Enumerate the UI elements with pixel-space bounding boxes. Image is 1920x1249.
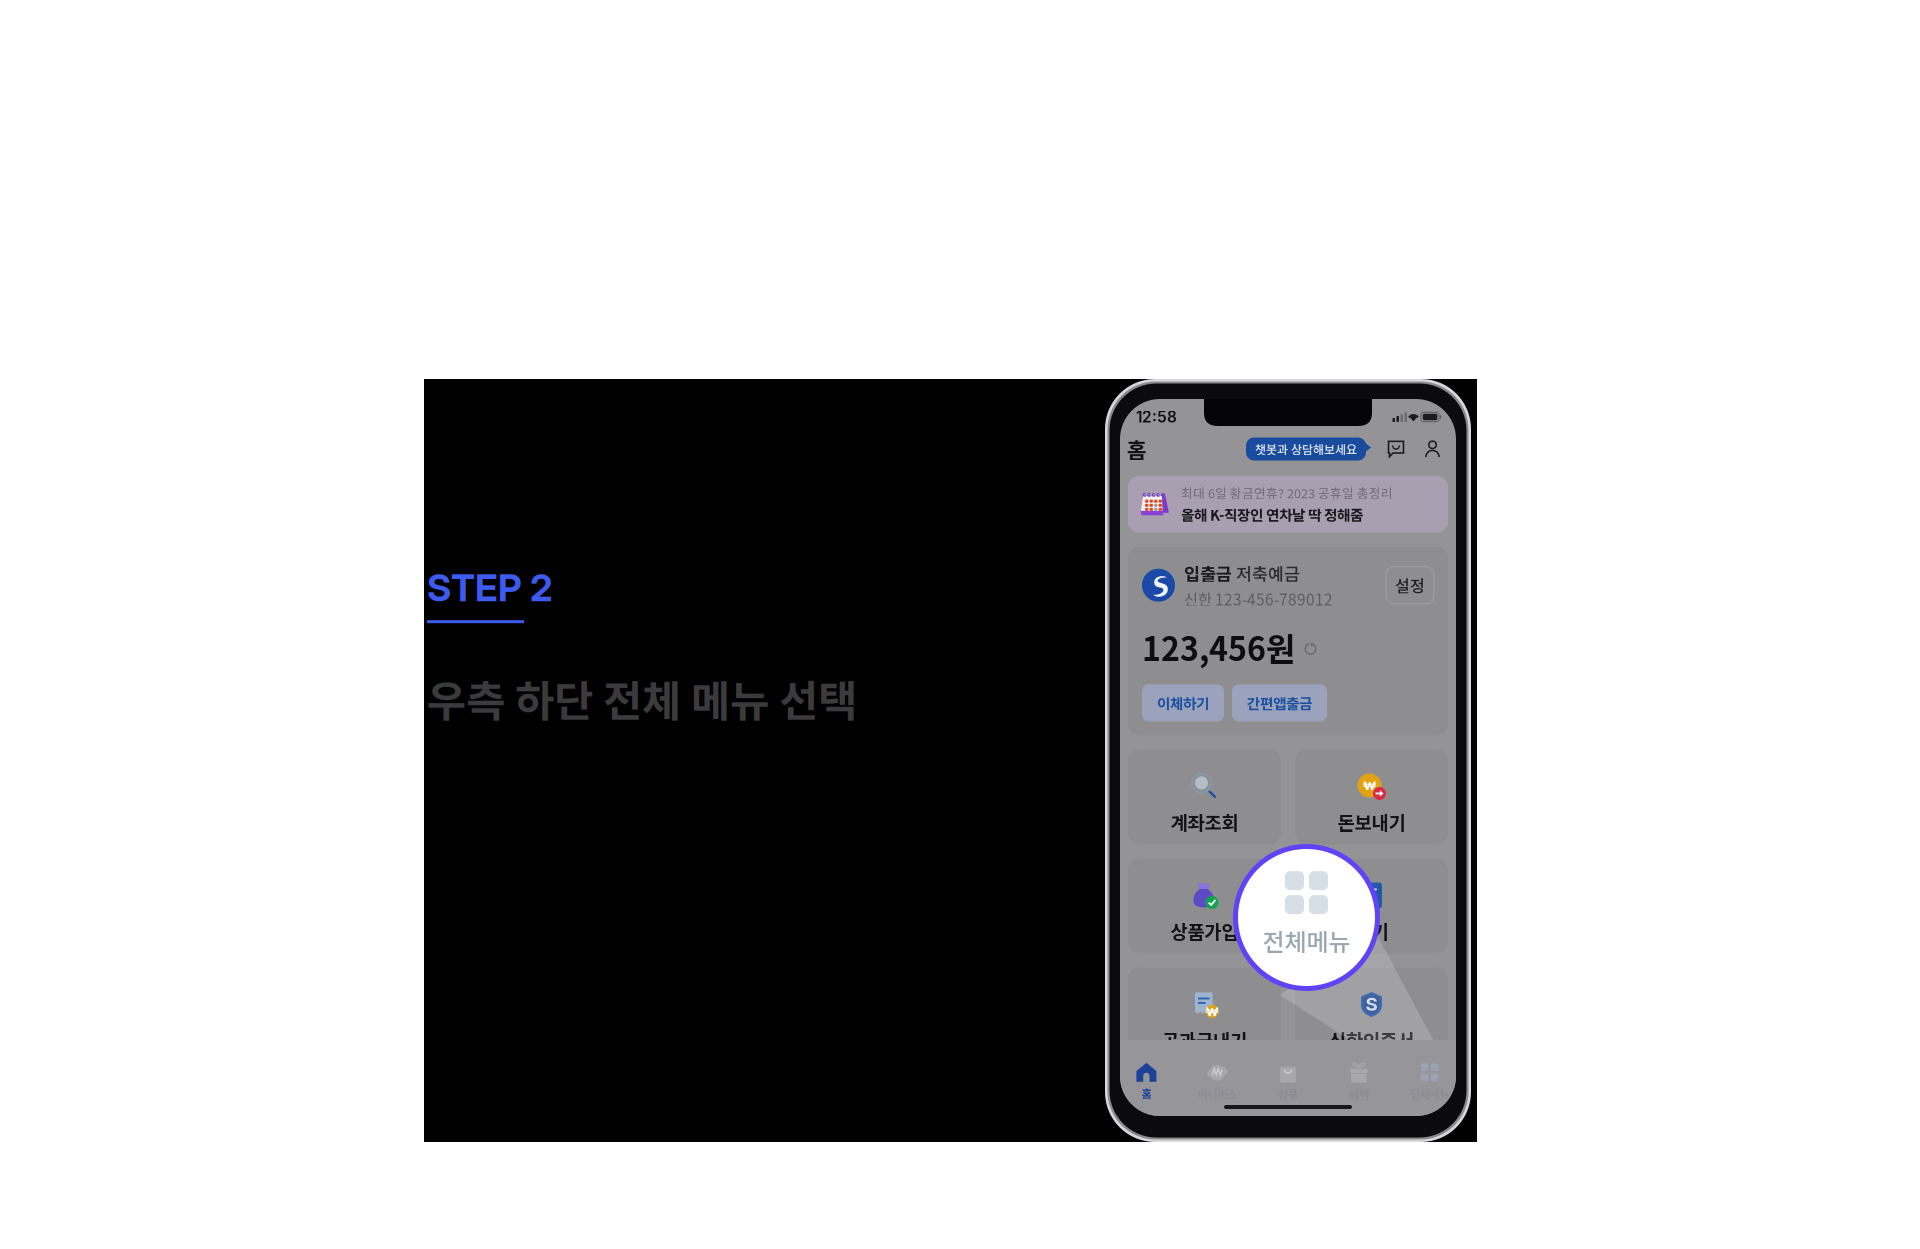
staticText: 123,456원 bbox=[1142, 624, 1295, 670]
staticText: 저축예금 bbox=[1236, 561, 1300, 586]
staticText: 신한 123-456-789012 bbox=[1184, 588, 1333, 610]
button[interactable]: 찾기 bbox=[1295, 858, 1448, 953]
button[interactable]: 홈 bbox=[1127, 434, 1147, 464]
staticText: S bbox=[1365, 993, 1377, 1015]
button[interactable]: 공과금내기 bbox=[1128, 967, 1281, 1062]
staticText: 전체메뉴 bbox=[1410, 1085, 1450, 1102]
staticText: 신한인증서 bbox=[1329, 1026, 1414, 1053]
staticText: 올해 K-직장인 연차날 딱 정해줌 bbox=[1181, 504, 1363, 525]
staticText: 입출금 bbox=[1184, 561, 1232, 586]
button[interactable]: 홈 bbox=[1111, 1064, 1182, 1100]
button[interactable]: 챗봇과 상담해보세요 bbox=[1246, 437, 1375, 460]
staticText: 챗봇과 상담해보세요 bbox=[1255, 440, 1357, 458]
button[interactable]: 설정 bbox=[1386, 567, 1434, 604]
button[interactable]: 전체메뉴 bbox=[1394, 1064, 1465, 1100]
staticText: 이체하기 bbox=[1157, 692, 1209, 713]
staticText: 돈보내기 bbox=[1337, 808, 1405, 835]
button[interactable]: 혜택 bbox=[1323, 1064, 1394, 1100]
staticText: 계좌조회 bbox=[1170, 808, 1238, 835]
staticText: 우측 하단 전체 메뉴 선택 bbox=[427, 667, 857, 729]
staticText: 최대 6일 황금연휴? 2023 공휴일 총정리 bbox=[1181, 483, 1393, 502]
staticText: 공과금내기 bbox=[1162, 1026, 1247, 1053]
button[interactable]: 이체하기 bbox=[1142, 684, 1224, 721]
staticText: 설정 bbox=[1395, 574, 1425, 597]
button[interactable]: 최대 6일 황금연휴? 2023 공휴일 총정리 bbox=[1128, 476, 1448, 533]
staticText: 혜택 bbox=[1349, 1085, 1369, 1102]
button[interactable]: 상품가입 bbox=[1128, 858, 1281, 953]
staticText: 찾기 bbox=[1354, 917, 1388, 944]
button[interactable]: 계좌조회 bbox=[1128, 749, 1281, 844]
staticText: 12:58 bbox=[1136, 408, 1177, 426]
staticText: 상품가입 bbox=[1170, 917, 1238, 944]
staticText: 상품 bbox=[1278, 1085, 1298, 1102]
button[interactable]: 돈보내기 bbox=[1295, 749, 1448, 844]
staticText: 전체메뉴 bbox=[1262, 923, 1350, 958]
staticText: 홈 bbox=[1141, 1085, 1151, 1102]
staticText: 간편앱출금 bbox=[1247, 692, 1312, 713]
button[interactable]: S bbox=[1295, 967, 1448, 1062]
button[interactable]: 상품 bbox=[1253, 1064, 1323, 1100]
button[interactable]: My profile bbox=[1424, 440, 1441, 458]
button[interactable]: 머니버스 bbox=[1182, 1064, 1253, 1100]
staticText: 머니버스 bbox=[1197, 1085, 1237, 1102]
button[interactable]: Chatbot bbox=[1387, 440, 1405, 457]
staticText: 홈 bbox=[1127, 434, 1147, 464]
staticText: STEP 2 bbox=[427, 565, 553, 610]
button[interactable]: 간편앱출금 bbox=[1232, 684, 1327, 721]
